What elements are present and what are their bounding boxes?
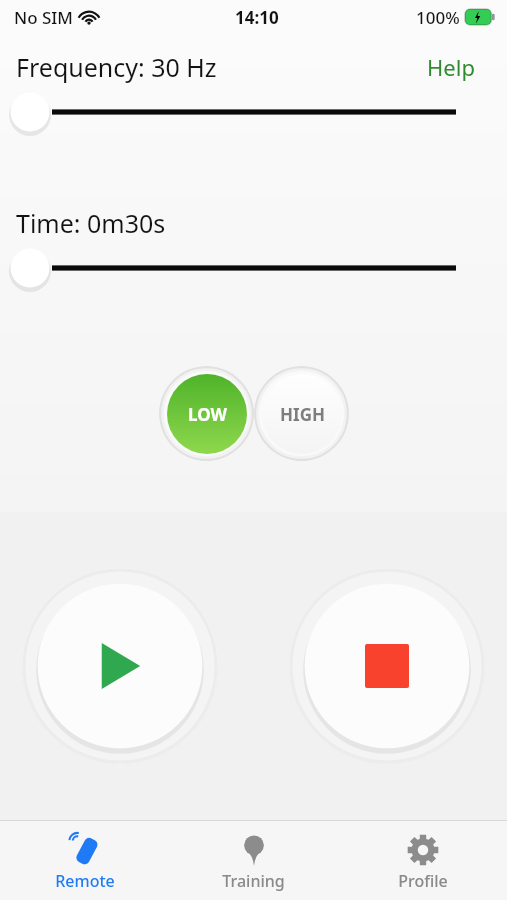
staticText: Training — [222, 870, 285, 892]
button[interactable]: Stop — [289, 568, 485, 764]
staticText: Frequency: 30 Hz — [16, 50, 217, 84]
staticText: Remote — [55, 870, 115, 892]
button[interactable]: Help — [423, 50, 479, 84]
button[interactable] — [0, 90, 507, 134]
button[interactable]: LOW — [159, 366, 254, 461]
staticText: No SIM — [14, 6, 73, 29]
staticText: 14:10 — [235, 6, 279, 29]
button[interactable]: HIGH — [254, 366, 349, 461]
button[interactable]: Profile — [338, 821, 507, 900]
button[interactable] — [0, 246, 507, 290]
staticText: HIGH — [280, 403, 325, 426]
staticText: Profile — [398, 870, 448, 892]
button[interactable]: Remote — [0, 821, 169, 900]
staticText: 100% — [416, 6, 460, 29]
staticText: LOW — [188, 403, 227, 426]
button[interactable]: Play — [22, 568, 218, 764]
button[interactable]: Training — [169, 821, 338, 900]
staticText: Help — [427, 52, 475, 82]
staticText: Time: 0m30s — [16, 206, 166, 240]
